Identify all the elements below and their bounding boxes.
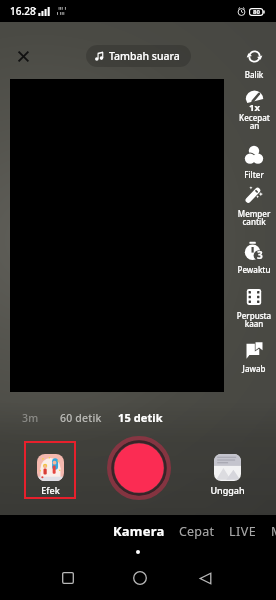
staticText: 1x xyxy=(249,101,260,114)
button[interactable]: 15 detik xyxy=(118,410,163,425)
button[interactable]: Mempercantik xyxy=(236,186,272,227)
button[interactable]: Recents xyxy=(54,564,82,592)
button[interactable]: Cepat xyxy=(179,523,215,540)
button[interactable]: Perpustakaan xyxy=(236,288,272,329)
staticText: Efek xyxy=(41,484,60,496)
button[interactable]: Kamera xyxy=(113,522,165,540)
button[interactable]: 3 xyxy=(236,241,272,275)
staticText: Perpustakaan xyxy=(236,310,272,329)
button[interactable]: Home xyxy=(126,564,154,592)
button[interactable]: Efek xyxy=(32,454,68,496)
button[interactable]: 1x xyxy=(236,91,272,131)
button[interactable]: Unggah xyxy=(205,454,249,496)
button[interactable]: Tambah suara xyxy=(86,45,191,67)
staticText: Mempercantik xyxy=(236,208,272,227)
staticText: 80 xyxy=(253,8,260,16)
button[interactable]: Back xyxy=(191,564,219,592)
staticText: Tambah suara xyxy=(109,49,180,63)
staticText: Balik xyxy=(236,69,272,80)
button[interactable]: Close xyxy=(11,44,35,68)
button[interactable]: LIVE xyxy=(229,523,257,540)
button[interactable]: Jawab xyxy=(236,342,272,374)
button[interactable]: Balik xyxy=(236,49,272,80)
staticText: Unggah xyxy=(210,484,245,496)
button[interactable]: Record xyxy=(107,436,171,500)
staticText: 16.28 xyxy=(10,4,36,18)
button[interactable]: M xyxy=(271,523,276,540)
staticText: Filter xyxy=(236,169,272,180)
button[interactable]: 3m xyxy=(22,411,39,425)
button[interactable]: 60 detik xyxy=(60,411,102,425)
staticText: Jawab xyxy=(236,363,272,374)
staticText: Pewaktu xyxy=(236,264,272,275)
staticText: 3 xyxy=(257,248,263,262)
staticText: Kecepatan xyxy=(239,112,270,131)
button[interactable]: Filter xyxy=(236,146,272,180)
